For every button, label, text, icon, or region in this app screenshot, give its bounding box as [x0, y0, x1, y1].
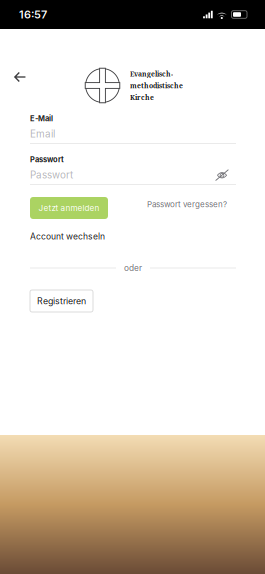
button[interactable]: Jetzt anmelden: [30, 197, 108, 219]
staticText: Passwort: [30, 169, 73, 181]
staticText: Evangelisch-: [130, 69, 173, 78]
button[interactable]: Registrieren: [30, 290, 93, 312]
staticText: Passwort vergessen?: [147, 199, 227, 209]
button[interactable]: Account wechseln: [30, 231, 105, 242]
staticText: Email: [30, 128, 55, 140]
staticText: Account wechseln: [30, 231, 105, 242]
staticText: Kirche: [130, 93, 154, 102]
staticText: methodistische: [130, 81, 183, 90]
staticText: Registrieren: [37, 296, 86, 306]
button[interactable]: Passwort vergessen?: [147, 197, 236, 209]
button[interactable]: Back: [0, 36, 35, 92]
staticText: 16:57: [19, 8, 47, 21]
staticText: oder: [124, 263, 142, 273]
staticText: Jetzt anmelden: [38, 203, 99, 213]
staticText: Passwort: [30, 155, 64, 164]
staticText: E-Mail: [30, 114, 53, 123]
